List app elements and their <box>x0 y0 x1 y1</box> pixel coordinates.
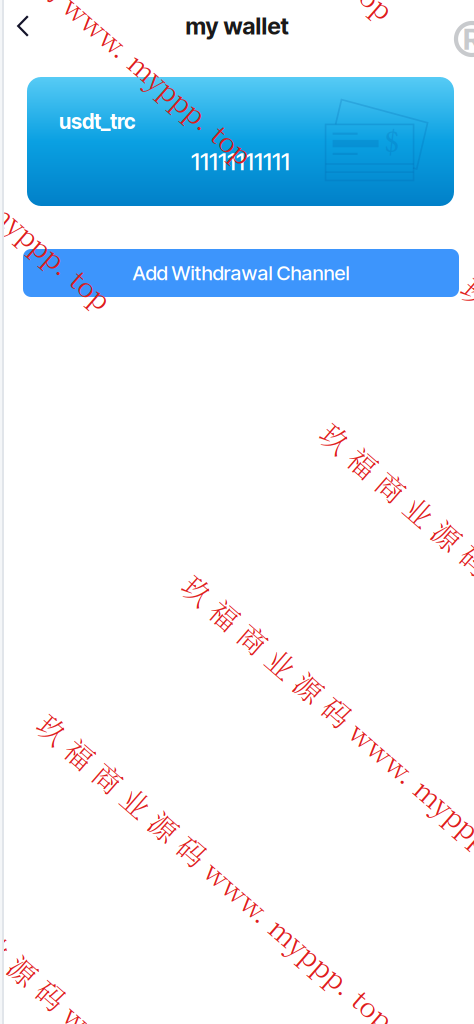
staticText: R <box>463 21 474 57</box>
staticText: 玖 福 商 业 源 码 www. myppp. top <box>55 705 474 745</box>
staticText: 玖 福 商 业 源 码 www. myppp. top <box>0 849 376 889</box>
staticText: usdt_trc <box>59 109 135 134</box>
staticText: my wallet <box>185 12 288 40</box>
staticText: 玖 福 商 业 源 码 www. myppp. top <box>200 566 474 606</box>
staticText: $ <box>384 119 399 163</box>
button[interactable]: Add Withdrawal Channel <box>23 249 459 297</box>
staticText: 11111111111 <box>191 147 290 176</box>
staticText: 玖 福 商 业 源 码 www. myppp. top <box>0 993 235 1024</box>
staticText: Add Withdrawal Channel <box>132 261 349 285</box>
button[interactable]: Back <box>0 3 46 49</box>
staticText: 玖 福 商 业 源 码 www. myppp. top <box>0 0 235 25</box>
staticText: 玖 福 商 业 源 码 www. myppp. top <box>338 414 474 454</box>
